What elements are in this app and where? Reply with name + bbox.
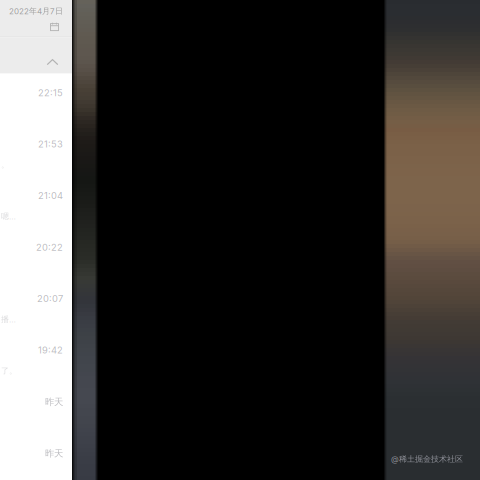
staticText: 21:04	[38, 190, 63, 201]
staticText: 2022年4月7日	[9, 6, 63, 16]
staticText: 19:42	[38, 345, 63, 356]
staticText: 20:07	[37, 293, 63, 304]
staticText: @稀土掘金技术社区	[391, 454, 463, 464]
staticText: 21:53	[38, 139, 63, 150]
button[interactable]: 昨天	[0, 383, 72, 434]
staticText: 22:15	[38, 87, 63, 99]
button[interactable]: Collapse section	[0, 37, 72, 74]
staticText: 嗯…	[1, 211, 16, 221]
button[interactable]: 21:53	[0, 125, 72, 177]
button[interactable]: 20:07	[0, 280, 72, 331]
staticText: 昨天	[45, 396, 63, 408]
staticText: 播…	[1, 314, 16, 324]
staticText: 20:22	[36, 242, 63, 253]
button[interactable]: 19:42	[0, 331, 72, 383]
staticText: 了。	[1, 366, 17, 376]
button[interactable]: 21:04	[0, 177, 72, 228]
button[interactable]: 昨天	[0, 434, 72, 480]
button[interactable]: 22:15	[0, 74, 72, 125]
staticText: 昨天	[45, 447, 63, 459]
button[interactable]: 20:22	[0, 228, 72, 280]
